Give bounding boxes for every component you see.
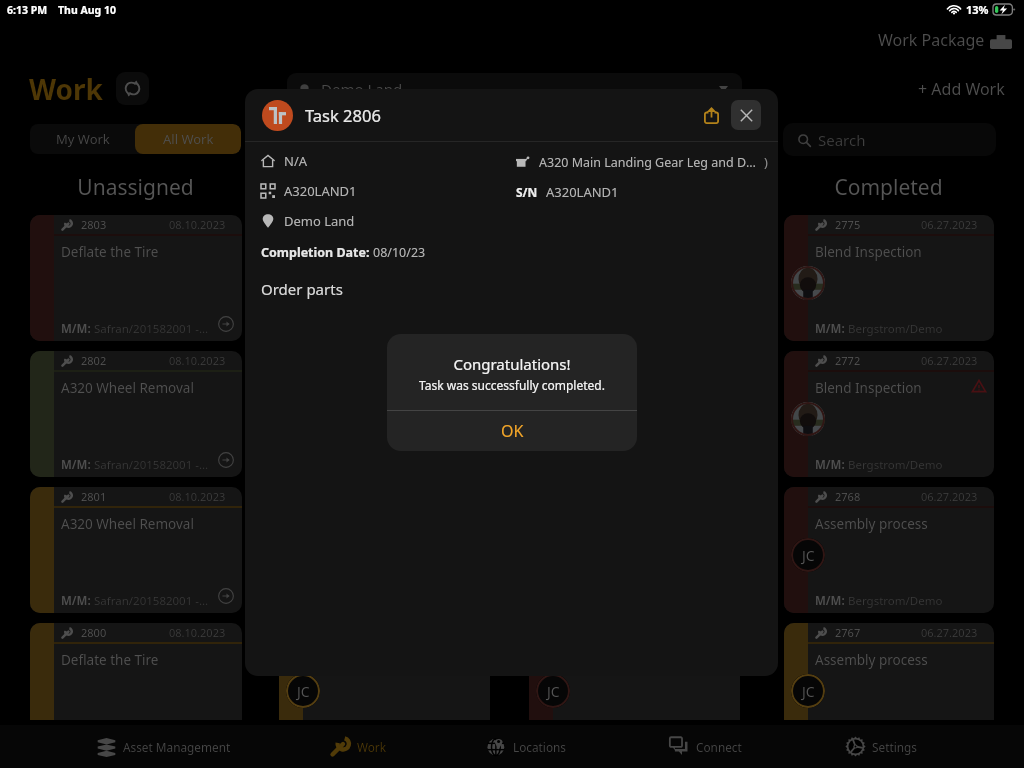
button[interactable]: + Add Work — [918, 78, 1005, 100]
staticText: Safran/201582001 -... — [91, 593, 209, 609]
staticText: Settings — [872, 739, 917, 755]
button[interactable]: 2775 — [784, 215, 994, 341]
button[interactable]: 2768 — [784, 487, 994, 613]
staticText: M/M: — [61, 593, 91, 609]
button[interactable]: Work Package — [878, 29, 1012, 51]
staticText: M/M: — [61, 321, 91, 337]
staticText: Work Package — [878, 29, 985, 51]
button[interactable]: OK — [387, 410, 637, 451]
staticText: JC — [802, 546, 815, 565]
staticText: 06.27.2023 — [921, 625, 978, 640]
button[interactable]: 2789 — [529, 623, 740, 720]
staticText: Safran/201582001 -... — [91, 321, 209, 337]
staticText: 2803 — [81, 217, 107, 232]
staticText: Demo Land — [321, 79, 403, 99]
staticText: Work — [29, 70, 103, 108]
staticText: ) — [764, 153, 768, 171]
staticText: Bergstrom/Demo — [845, 321, 943, 337]
staticText: 08.10.2023 — [169, 353, 226, 368]
staticText: 2801 — [81, 489, 107, 504]
staticText: 08/10/23 — [373, 244, 426, 261]
button[interactable]: Close — [731, 100, 761, 130]
staticText: Task 2806 — [305, 104, 381, 126]
staticText: JC — [297, 682, 310, 701]
staticText: Completed — [784, 173, 993, 202]
button[interactable]: Asset Management — [96, 725, 231, 768]
staticText: + Add Work — [918, 78, 1005, 100]
staticText: 2767 — [835, 625, 861, 640]
staticText: Thu Aug 10 — [58, 3, 116, 17]
staticText: M/M: — [815, 457, 845, 473]
staticText: Deflate the Tire — [61, 243, 159, 261]
staticText: Connect — [696, 739, 742, 755]
staticText: Safran/201582001 -... — [91, 457, 209, 473]
staticText: 08.10.2023 — [169, 625, 226, 640]
staticText: 13% — [966, 2, 989, 17]
staticText: 2800 — [81, 625, 107, 640]
staticText: JC — [802, 682, 815, 701]
staticText: Assembly process — [815, 515, 928, 533]
staticText: 06.27.2023 — [921, 489, 978, 504]
staticText: 2775 — [835, 217, 861, 232]
staticText: Blend Inspection — [815, 379, 922, 397]
button[interactable]: 2772 — [784, 351, 994, 477]
staticText: Deflate the Tire — [61, 651, 159, 669]
button[interactable]: Demo Land — [287, 73, 742, 105]
staticText: Completion Date: — [261, 244, 373, 261]
staticText: 08.10.2023 — [169, 489, 226, 504]
button[interactable]: My Work — [30, 124, 135, 154]
staticText: S/N — [516, 184, 538, 200]
staticText: Assembly process — [815, 651, 928, 669]
button[interactable]: Work — [330, 725, 387, 768]
button[interactable]: Refresh — [116, 72, 149, 105]
staticText: M/M: — [815, 321, 845, 337]
button[interactable]: Connect — [669, 725, 742, 768]
staticText: A320 Wheel Removal — [61, 379, 194, 397]
button[interactable]: 2790 — [279, 623, 490, 720]
staticText: 2772 — [835, 353, 861, 368]
staticText: Blend Inspection — [815, 243, 922, 261]
staticText: A320LAND1 — [546, 183, 619, 201]
button[interactable]: 2801 — [30, 487, 242, 613]
button[interactable]: Locations — [486, 725, 566, 768]
button[interactable]: 2803 — [30, 215, 242, 341]
staticText: All Work — [163, 130, 214, 148]
staticText: A320LAND1 — [284, 182, 357, 200]
staticText: Order parts — [261, 279, 343, 299]
staticText: 06.27.2023 — [921, 353, 978, 368]
staticText: OK — [501, 420, 524, 442]
button[interactable]: Settings — [845, 725, 917, 768]
staticText: Asset Management — [123, 739, 231, 755]
staticText: Unassigned — [30, 173, 241, 202]
button[interactable]: Search — [783, 123, 996, 156]
staticText: 2802 — [81, 353, 107, 368]
staticText: A320 Wheel Removal — [61, 515, 194, 533]
staticText: 06.27.2023 — [921, 217, 978, 232]
staticText: My Work — [56, 130, 110, 148]
staticText: 2768 — [835, 489, 861, 504]
button[interactable]: 2767 — [784, 623, 994, 720]
button[interactable]: 2802 — [30, 351, 242, 477]
button[interactable]: 2800 — [30, 623, 242, 720]
staticText: M/M: — [815, 593, 845, 609]
staticText: N/A — [284, 152, 308, 170]
staticText: M/M: — [61, 457, 91, 473]
staticText: Demo Land — [284, 212, 355, 230]
staticText: Task was successfully completed. — [387, 377, 637, 393]
staticText: 08.10.2023 — [169, 217, 226, 232]
staticText: JC — [547, 682, 560, 701]
staticText: 6:13 PM — [7, 3, 48, 17]
button[interactable]: All Work — [135, 124, 241, 154]
button[interactable]: Share — [696, 100, 726, 130]
staticText: Congratulations! — [387, 354, 637, 374]
staticText: A320 Main Landing Gear Leg and Dr... — [539, 154, 758, 171]
staticText: Search — [818, 130, 866, 150]
staticText: Bergstrom/Demo — [845, 593, 943, 609]
staticText: Bergstrom/Demo — [845, 457, 943, 473]
